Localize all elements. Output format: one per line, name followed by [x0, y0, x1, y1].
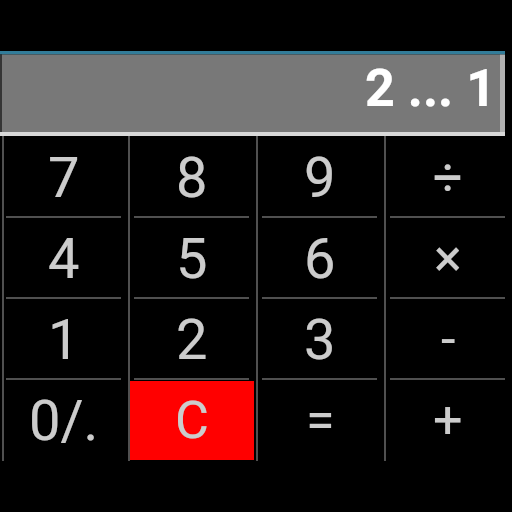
button[interactable]: 2 [128, 298, 256, 379]
staticText: 5 [176, 226, 208, 292]
staticText: × [434, 228, 462, 289]
staticText: 6 [304, 226, 336, 292]
staticText: 8 [176, 145, 208, 211]
button[interactable]: 0/. [0, 379, 128, 460]
button[interactable]: - [384, 298, 512, 379]
staticText: 4 [48, 226, 80, 292]
button[interactable]: + [384, 379, 512, 460]
button[interactable]: 4 [0, 217, 128, 298]
button[interactable]: C [128, 379, 256, 460]
staticText: - [441, 309, 456, 370]
button[interactable]: ÷ [384, 136, 512, 217]
staticText: 9 [304, 145, 336, 211]
staticText: + [433, 390, 463, 451]
staticText: 0/. [29, 388, 99, 454]
button[interactable]: × [384, 217, 512, 298]
button[interactable]: 9 [256, 136, 384, 217]
button[interactable]: 3 [256, 298, 384, 379]
staticText: 2 ... 1 [365, 58, 496, 119]
button[interactable]: = [256, 379, 384, 460]
button[interactable]: 1 [0, 298, 128, 379]
staticText: C [175, 390, 209, 451]
staticText: 2 [176, 307, 208, 373]
button[interactable]: 6 [256, 217, 384, 298]
button[interactable]: 8 [128, 136, 256, 217]
button[interactable]: 5 [128, 217, 256, 298]
staticText: = [306, 390, 335, 451]
staticText: 7 [48, 145, 80, 211]
staticText: 3 [304, 307, 336, 373]
button[interactable]: 7 [0, 136, 128, 217]
staticText: ÷ [433, 147, 463, 208]
staticText: 1 [48, 307, 80, 373]
